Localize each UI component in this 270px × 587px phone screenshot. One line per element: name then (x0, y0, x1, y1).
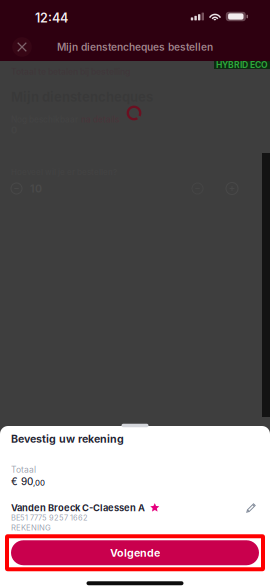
staticText: REKENING (11, 523, 51, 532)
staticText: 12:44 (35, 10, 68, 26)
staticText: Bevestig uw rekening (11, 432, 124, 445)
staticText: Volgende (110, 546, 160, 559)
staticText: Totaal (11, 465, 36, 475)
staticText: € 90 (11, 476, 33, 488)
staticText: Vanden Broeck C-Claessen A (11, 502, 145, 513)
button[interactable]: Sluiten (11, 36, 33, 58)
staticText: ,00 (33, 478, 45, 488)
button[interactable]: Volgende (7, 536, 263, 569)
staticText: HYBRID ECO (216, 60, 268, 70)
staticText: BE51 7775 9257 1662 (11, 513, 88, 522)
staticText: Mijn dienstencheques bestellen (57, 41, 213, 53)
staticText: 10 (30, 182, 42, 195)
button[interactable]: Rekening bewerken (243, 500, 259, 516)
